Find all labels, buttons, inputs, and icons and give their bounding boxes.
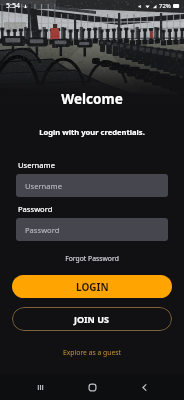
staticText: Password [18,204,53,214]
staticText: Login with your credentials. [0,127,184,137]
button[interactable]: JOIN US [12,307,172,331]
staticText: Username [18,160,55,170]
staticText: LOGIN [76,280,109,294]
button[interactable]: Home [66,374,118,400]
staticText: Welcome [0,90,184,108]
button[interactable]: LOGIN [12,275,172,298]
staticText: 5:54 [6,1,20,11]
button[interactable]: Back [118,374,170,400]
staticText: Password [25,225,60,235]
staticText: Username [25,181,62,191]
button[interactable]: Username [16,174,168,197]
button[interactable]: Explore as a guest [0,348,184,357]
button[interactable]: Recents [14,374,66,400]
staticText: 72% [159,2,171,10]
button[interactable]: Forgot Password [0,254,184,263]
staticText: JOIN US [74,313,110,325]
button[interactable]: Password [16,218,168,241]
